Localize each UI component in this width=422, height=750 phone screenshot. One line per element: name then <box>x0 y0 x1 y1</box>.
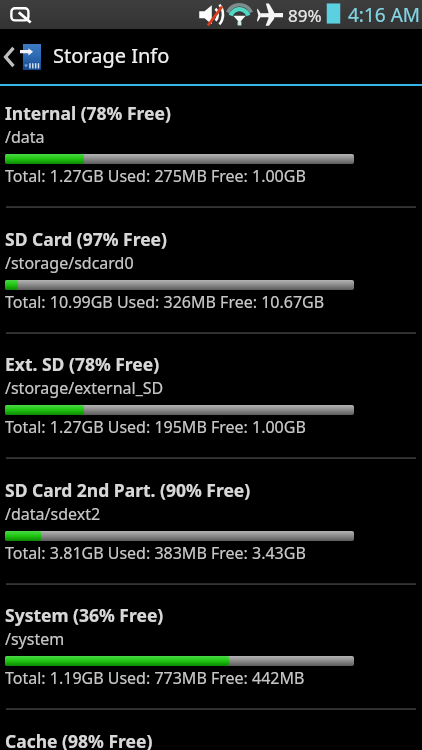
staticText: SD Card 2nd Part. (90% Free) <box>5 478 251 502</box>
staticText: Total: 1.27GB Used: 195MB Free: 1.00GB <box>5 416 306 438</box>
staticText: /system <box>5 628 65 650</box>
staticText: Storage Info <box>53 42 170 69</box>
other: Screen recording <box>10 4 33 25</box>
button[interactable]: System (36% Free) <box>0 588 422 713</box>
button[interactable]: Internal (78% Free) <box>0 86 422 211</box>
button[interactable]: Ext. SD (78% Free) <box>0 337 422 462</box>
staticText: 89% <box>288 4 322 27</box>
staticText: /data <box>5 126 45 148</box>
staticText: System (36% Free) <box>5 603 164 627</box>
staticText: 4:16 AM <box>348 2 421 28</box>
staticText: /storage/external_SD <box>5 377 164 399</box>
staticText: Total: 1.27GB Used: 275MB Free: 1.00GB <box>5 165 306 187</box>
button[interactable]: Navigate up, Storage Info <box>0 29 422 84</box>
button[interactable]: SD Card 2nd Part. (90% Free) <box>0 463 422 588</box>
staticText: Cache (98% Free) <box>5 729 153 750</box>
staticText: SD Card (97% Free) <box>5 227 167 251</box>
button[interactable]: SD Card (97% Free) <box>0 212 422 337</box>
staticText: Total: 3.81GB Used: 383MB Free: 3.43GB <box>5 542 306 564</box>
staticText: Total: 10.99GB Used: 326MB Free: 10.67GB <box>5 291 325 313</box>
staticText: Total: 1.19GB Used: 773MB Free: 442MB <box>5 667 305 689</box>
staticText: Internal (78% Free) <box>5 101 171 125</box>
staticText: /data/sdext2 <box>5 503 101 525</box>
staticText: /storage/sdcard0 <box>5 252 134 274</box>
staticText: Ext. SD (78% Free) <box>5 352 160 376</box>
button[interactable]: Cache (98% Free) <box>0 714 422 750</box>
